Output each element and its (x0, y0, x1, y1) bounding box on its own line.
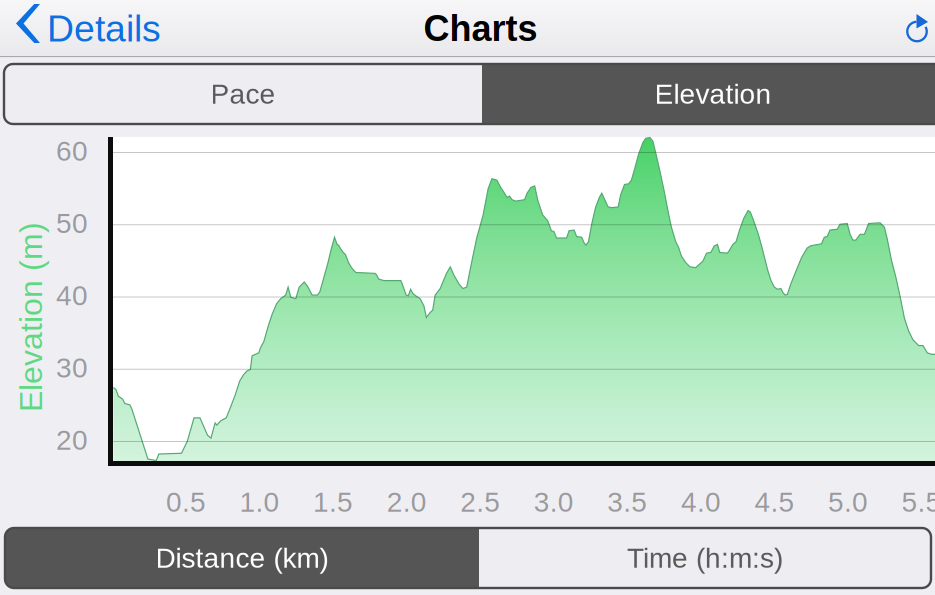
staticText: 4.5 (754, 486, 794, 518)
staticText: 5.5 (902, 486, 935, 518)
staticText: 5.0 (828, 486, 868, 518)
button[interactable]: Time (h:m:s) (479, 528, 931, 588)
button[interactable]: Pace (4, 64, 482, 124)
staticText: Elevation (m) (0, 299, 126, 335)
staticText: Charts (423, 8, 537, 49)
staticText: 20 (56, 424, 88, 456)
staticText: 50 (56, 208, 88, 239)
staticText: Time (h:m:s) (627, 542, 783, 574)
staticText: 1.5 (313, 486, 353, 518)
staticText: 3.5 (607, 486, 647, 518)
staticText: Details (47, 8, 161, 49)
staticText: 40 (56, 280, 88, 311)
button[interactable]: Details (0, 0, 161, 57)
staticText: 4.0 (681, 486, 721, 518)
staticText: 1.0 (240, 486, 280, 518)
staticText: 30 (56, 352, 88, 383)
button[interactable]: Distance (km) (5, 528, 479, 588)
staticText: Distance (km) (155, 542, 328, 574)
staticText: 2.0 (387, 486, 427, 518)
staticText: 0.5 (166, 486, 206, 518)
staticText: 60 (56, 135, 88, 167)
button[interactable]: Elevation (482, 64, 935, 124)
staticText: 3.0 (534, 486, 574, 518)
staticText: 2.5 (460, 486, 500, 518)
button[interactable]: Refresh (905, 0, 935, 57)
staticText: Elevation (654, 78, 771, 110)
staticText: Pace (210, 78, 275, 110)
